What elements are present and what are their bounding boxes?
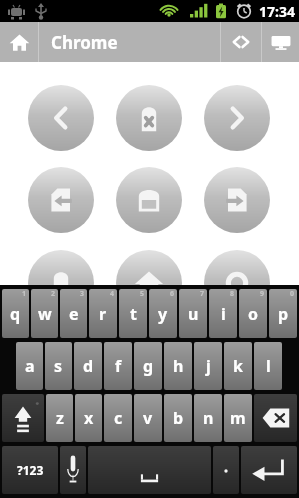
button[interactable]: Voice input: [60, 446, 86, 494]
button[interactable]: Home page: [116, 250, 182, 316]
staticText: q: [10, 303, 21, 325]
button[interactable]: j: [194, 342, 222, 390]
button[interactable]: Stop: [116, 85, 182, 151]
button[interactable]: View source: [221, 22, 261, 62]
button[interactable]: c: [104, 394, 132, 442]
staticText: z: [56, 407, 64, 429]
button[interactable]: Space: [88, 446, 211, 494]
button[interactable]: Shift: [2, 394, 44, 442]
staticText: b: [173, 407, 184, 429]
staticText: m: [230, 407, 246, 429]
button[interactable]: a: [16, 342, 43, 390]
staticText: c: [114, 407, 123, 429]
button[interactable]: b: [164, 394, 192, 442]
staticText: Chrome: [51, 31, 118, 54]
button[interactable]: Search: [204, 250, 270, 316]
staticText: o: [248, 303, 259, 325]
staticText: 4: [110, 289, 115, 299]
button[interactable]: h: [164, 342, 192, 390]
staticText: x: [84, 407, 94, 429]
button[interactable]: w: [31, 289, 58, 338]
button[interactable]: x: [75, 394, 102, 442]
staticText: ?123: [17, 462, 44, 478]
staticText: i: [221, 303, 226, 325]
staticText: 17:34: [259, 2, 295, 21]
staticText: 5: [140, 289, 145, 299]
button[interactable]: k: [224, 342, 252, 390]
staticText: v: [143, 407, 153, 429]
button[interactable]: e: [60, 289, 87, 338]
button[interactable]: d: [74, 342, 102, 390]
button[interactable]: Forward: [204, 85, 270, 151]
button[interactable]: t: [119, 289, 147, 338]
button[interactable]: u: [179, 289, 207, 338]
staticText: r: [99, 303, 107, 325]
button[interactable]: Enter: [241, 446, 297, 494]
button[interactable]: v: [134, 394, 162, 442]
button[interactable]: Chrome: [39, 22, 220, 62]
staticText: 9: [260, 289, 265, 299]
button[interactable]: Tabs: [116, 167, 182, 233]
staticText: w: [38, 303, 52, 325]
staticText: 7: [200, 289, 205, 299]
staticText: 2: [51, 289, 56, 299]
button[interactable]: Bookmarks: [28, 250, 94, 316]
button[interactable]: y: [149, 289, 177, 338]
staticText: d: [83, 355, 94, 377]
button[interactable]: m: [224, 394, 252, 442]
staticText: y: [158, 303, 168, 325]
staticText: 3: [80, 289, 85, 299]
button[interactable]: Next tab: [204, 167, 270, 233]
staticText: 8: [230, 289, 235, 299]
button[interactable]: n: [194, 394, 222, 442]
button[interactable]: Previous tab: [28, 167, 94, 233]
staticText: k: [233, 355, 243, 377]
staticText: a: [25, 355, 35, 377]
staticText: g: [143, 355, 154, 377]
staticText: s: [54, 355, 63, 377]
button[interactable]: Back: [28, 85, 94, 151]
staticText: h: [173, 355, 184, 377]
staticText: 1: [22, 289, 27, 299]
staticText: t: [130, 303, 137, 325]
button[interactable]: i: [209, 289, 237, 338]
button[interactable]: z: [46, 394, 73, 442]
staticText: l: [266, 355, 271, 377]
button[interactable]: o: [239, 289, 267, 338]
button[interactable]: l: [254, 342, 282, 390]
button[interactable]: g: [134, 342, 162, 390]
button[interactable]: ?123: [2, 446, 58, 494]
staticText: p: [278, 303, 289, 325]
staticText: n: [203, 407, 214, 429]
button[interactable]: f: [104, 342, 132, 390]
button[interactable]: s: [45, 342, 72, 390]
button[interactable]: Delete: [254, 394, 297, 442]
button[interactable]: p: [269, 289, 297, 338]
button[interactable]: Period: [213, 446, 239, 494]
staticText: 6: [170, 289, 175, 299]
staticText: 0: [290, 289, 295, 299]
button[interactable]: Display: [262, 22, 299, 62]
staticText: u: [188, 303, 199, 325]
button[interactable]: Home: [0, 22, 38, 62]
button[interactable]: r: [89, 289, 117, 338]
staticText: j: [206, 355, 211, 377]
staticText: e: [69, 303, 79, 325]
staticText: f: [115, 355, 122, 377]
button[interactable]: q: [2, 289, 29, 338]
